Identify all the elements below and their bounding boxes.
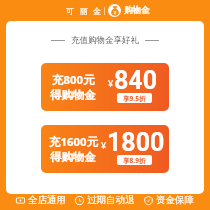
staticText: 得购物金 <box>50 150 96 164</box>
staticText: 1800 <box>107 128 165 157</box>
button[interactable]: 过期自动退 <box>75 194 135 206</box>
staticText: ¥ <box>108 77 114 89</box>
staticText: 充800元 <box>52 72 95 88</box>
staticText: 充值购物金享好礼 <box>71 35 139 46</box>
staticText: 可 丽 金 <box>66 5 104 16</box>
staticText: 享9.5折 <box>123 94 146 103</box>
staticText: 过期自动退 <box>87 194 135 206</box>
staticText: 充1600元 <box>49 134 98 150</box>
button[interactable]: 全店通用 <box>16 194 66 206</box>
button[interactable]: 资金保障 <box>144 194 194 206</box>
staticText: ¥ <box>101 139 107 151</box>
staticText: 得购物金 <box>50 88 96 102</box>
button[interactable]: 充1600元 <box>41 125 169 173</box>
staticText: 购物金 <box>124 5 150 16</box>
staticText: 全店通用 <box>28 194 66 206</box>
staticText: 资金保障 <box>156 194 194 206</box>
button[interactable]: 充800元 <box>41 63 169 111</box>
staticText: 840 <box>114 66 158 95</box>
staticText: 享8.9折 <box>123 156 146 165</box>
